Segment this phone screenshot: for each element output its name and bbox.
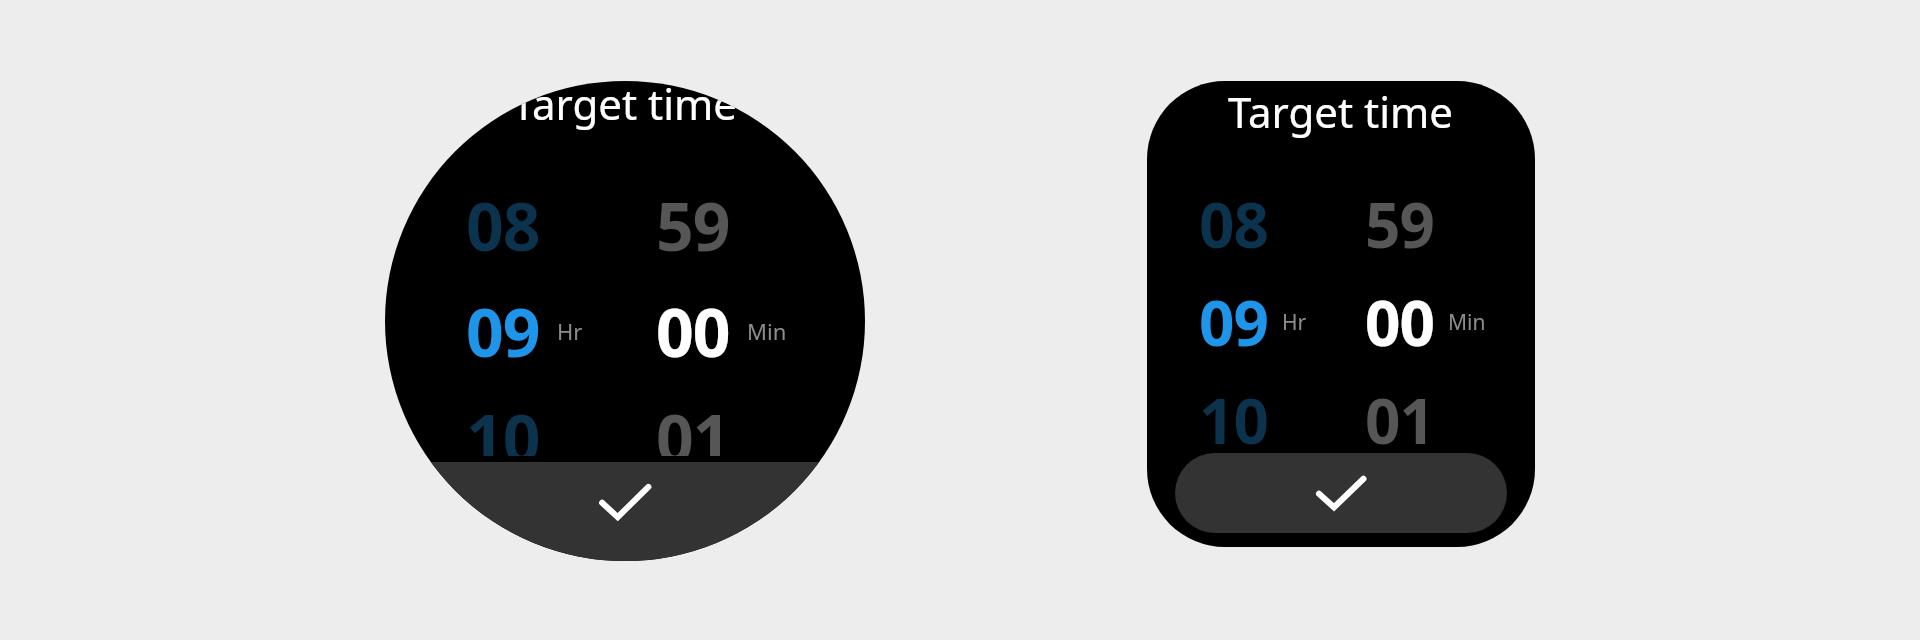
staticText: 08	[1199, 182, 1268, 266]
staticText: 10	[1199, 378, 1268, 453]
staticText: 59	[656, 180, 730, 270]
staticText: 08	[466, 180, 540, 270]
staticText: 09	[1199, 280, 1268, 364]
staticText: 01	[1365, 378, 1434, 453]
staticText: Hr	[1282, 308, 1307, 337]
staticText: 01	[656, 392, 730, 456]
staticText: 00	[1365, 280, 1434, 364]
button[interactable]: Confirm	[385, 462, 865, 561]
staticText: Min	[1448, 308, 1486, 337]
staticText: 09	[466, 286, 540, 376]
staticText: 59	[1365, 182, 1434, 266]
staticText: Min	[747, 316, 787, 346]
staticText: 10	[466, 392, 540, 456]
button[interactable]: Confirm	[1175, 453, 1507, 533]
staticText: 00	[656, 286, 730, 376]
staticText: Target time	[1228, 83, 1454, 140]
staticText: Hr	[557, 316, 583, 346]
staticText: Target time	[512, 81, 738, 132]
